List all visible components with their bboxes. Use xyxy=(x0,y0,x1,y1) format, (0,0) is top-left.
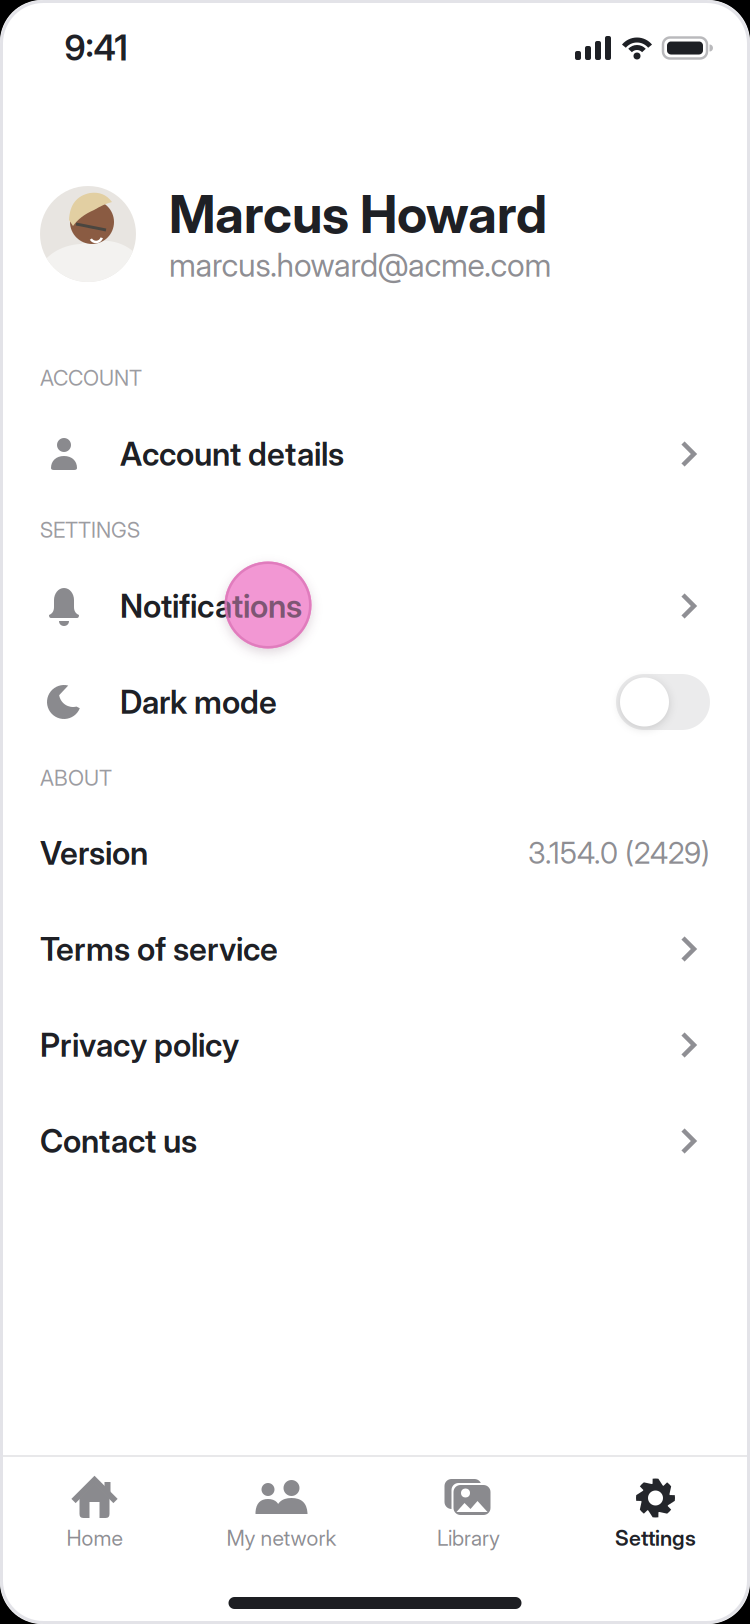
staticText: 3.154.0 (2429) xyxy=(528,836,710,870)
staticText: Dark mode xyxy=(120,683,277,721)
staticText: Library xyxy=(437,1525,500,1551)
button[interactable]: Home xyxy=(1,1461,188,1571)
staticText: Notifications xyxy=(120,587,302,625)
staticText: marcus.howard@acme.com xyxy=(169,246,551,284)
staticText: Privacy policy xyxy=(40,1026,239,1064)
button[interactable]: Notifications xyxy=(40,558,710,654)
staticText: Version xyxy=(40,834,148,872)
button[interactable]: Account details xyxy=(40,406,710,502)
staticText: My network xyxy=(226,1525,336,1551)
staticText: ACCOUNT xyxy=(40,365,142,391)
button[interactable]: My network xyxy=(188,1461,375,1571)
staticText: 9:41 xyxy=(64,28,127,68)
staticText: SETTINGS xyxy=(40,517,140,543)
button[interactable]: Dark mode off xyxy=(616,674,710,730)
staticText: ABOUT xyxy=(40,765,112,791)
button[interactable]: Contact us xyxy=(40,1093,710,1189)
staticText: Settings xyxy=(615,1525,696,1551)
staticText: Contact us xyxy=(40,1122,197,1160)
staticText: Marcus Howard xyxy=(169,183,547,245)
staticText: Account details xyxy=(120,435,344,473)
button[interactable]: Library xyxy=(375,1461,562,1571)
staticText: Home xyxy=(66,1525,122,1551)
staticText: Terms of service xyxy=(40,930,278,968)
button[interactable]: Settings xyxy=(562,1461,749,1571)
button[interactable]: Terms of service xyxy=(40,901,710,997)
button[interactable]: Privacy policy xyxy=(40,997,710,1093)
